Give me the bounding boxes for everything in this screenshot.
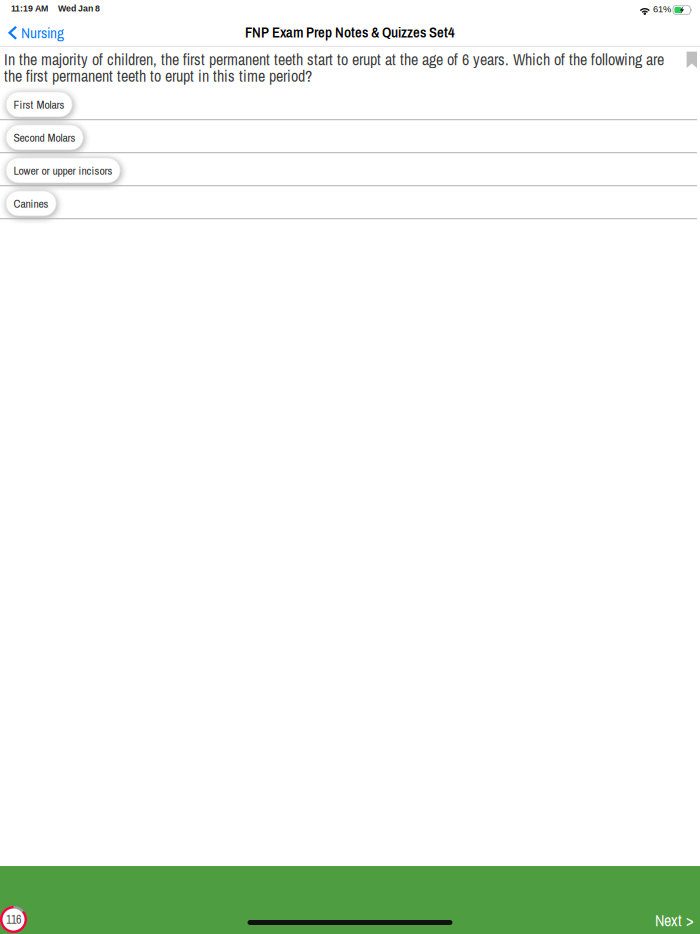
staticText: 116	[6, 911, 21, 928]
staticText: First Molars	[14, 97, 65, 112]
staticText: Wed Jan 8	[58, 4, 100, 13]
staticText: Nursing	[21, 22, 64, 43]
button[interactable]: Lower or upper incisors	[0, 156, 697, 189]
staticText: Next >	[655, 910, 694, 931]
staticText: Canines	[14, 196, 49, 211]
staticText: 11:19 AM	[11, 4, 48, 13]
button[interactable]: Nursing	[0, 17, 72, 49]
button[interactable]: First Molars	[0, 90, 697, 123]
staticText: In the majority of children, the first p…	[4, 49, 664, 87]
button[interactable]: Second Molars	[0, 123, 697, 156]
button[interactable]: Canines	[0, 189, 697, 222]
button[interactable]: Next >	[649, 905, 695, 934]
staticText: FNP Exam Prep Notes & Quizzes Set4	[245, 22, 455, 42]
staticText: Lower or upper incisors	[14, 163, 113, 178]
button[interactable]: Bookmark	[687, 49, 697, 68]
staticText: Second Molars	[14, 130, 76, 145]
staticText: 61%	[653, 4, 671, 14]
button[interactable]: Question 116 progress	[0, 904, 30, 934]
